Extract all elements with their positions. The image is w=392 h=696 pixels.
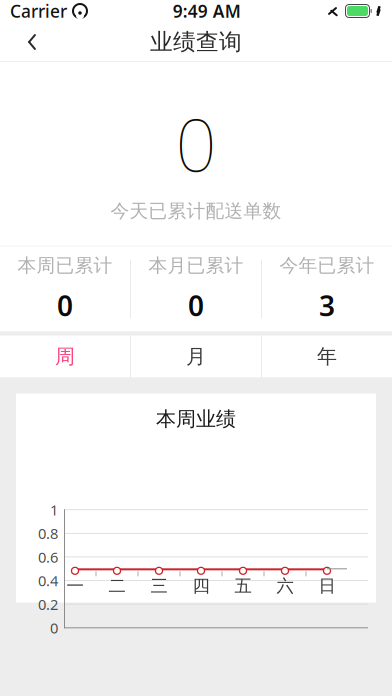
staticText: 三 xyxy=(150,575,167,597)
staticText: 今天已累计配送单数 xyxy=(110,200,281,222)
staticText: 日 xyxy=(318,575,335,597)
staticText: 五 xyxy=(234,575,251,597)
staticText: 0.4 xyxy=(38,571,58,590)
staticText: 今年已累计 xyxy=(279,254,374,277)
staticText: 本月已累计 xyxy=(148,254,243,277)
staticText: 9:49 AM xyxy=(173,0,241,22)
staticText: 0 xyxy=(175,96,216,192)
staticText: 0.2 xyxy=(38,594,58,614)
staticText: 年 xyxy=(317,344,337,369)
staticText: 0 xyxy=(188,287,204,324)
button[interactable]: 年 xyxy=(262,335,392,377)
staticText: 本周业绩 xyxy=(156,407,236,431)
button[interactable]: Back xyxy=(10,22,54,62)
staticText: 0.8 xyxy=(38,524,58,543)
staticText: 本周已累计 xyxy=(18,254,113,277)
button[interactable]: 周 xyxy=(0,335,130,377)
staticText: 0.6 xyxy=(38,547,58,567)
staticText: 周 xyxy=(55,344,75,369)
button[interactable]: 本月已累计 xyxy=(131,246,261,331)
staticText: 0 xyxy=(57,287,73,324)
staticText: 二 xyxy=(108,575,125,597)
staticText: 1 xyxy=(50,500,58,520)
button[interactable]: 本周已累计 xyxy=(0,246,130,331)
staticText: 3 xyxy=(319,287,335,324)
staticText: 月 xyxy=(186,344,206,369)
button[interactable]: 今年已累计 xyxy=(262,246,392,331)
staticText: Carrier xyxy=(10,0,67,22)
staticText: 六 xyxy=(276,575,293,597)
staticText: 0 xyxy=(50,618,58,638)
staticText: 业绩查询 xyxy=(150,28,242,56)
button[interactable]: 月 xyxy=(131,335,261,377)
staticText: 一 xyxy=(66,575,83,597)
staticText: 四 xyxy=(192,575,209,597)
